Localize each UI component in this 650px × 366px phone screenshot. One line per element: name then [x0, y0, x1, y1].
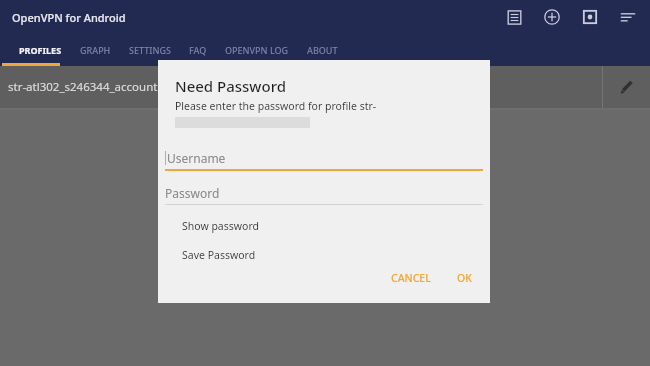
button[interactable]: GRAPH	[71, 34, 120, 66]
button[interactable]: PROFILES	[10, 34, 71, 66]
button[interactable]: Add profile	[540, 5, 564, 29]
button[interactable]: Save Password	[158, 247, 490, 263]
button[interactable]: Edit profile	[603, 66, 650, 108]
button[interactable]: SETTINGS	[120, 34, 180, 66]
button[interactable]: CANCEL	[387, 267, 435, 289]
button[interactable]: FAQ	[180, 34, 216, 66]
button[interactable]: ABOUT	[298, 34, 347, 66]
staticText: Need Password	[175, 76, 286, 96]
staticText: OpenVPN for Android	[12, 10, 126, 25]
button[interactable]: Username	[165, 145, 483, 171]
staticText: Please enter the password for profile st…	[175, 99, 377, 113]
staticText: Show password	[182, 219, 259, 233]
button[interactable]: Show password	[158, 218, 490, 234]
staticText: OPENVPN LOG	[225, 44, 289, 56]
button[interactable]: Import profile	[578, 5, 602, 29]
staticText: SETTINGS	[129, 44, 171, 56]
button[interactable]: OK	[453, 267, 476, 289]
staticText: PROFILES	[19, 44, 62, 56]
staticText: FAQ	[189, 44, 207, 56]
staticText: Save Password	[182, 248, 256, 262]
staticText: Username	[167, 150, 226, 166]
staticText: OK	[457, 271, 472, 285]
staticText: CANCEL	[391, 271, 431, 285]
button[interactable]: Sort	[616, 5, 640, 29]
staticText: Password	[165, 185, 220, 201]
staticText: ABOUT	[307, 44, 338, 56]
staticText: str-atl302_s246344_account	[8, 79, 158, 95]
button[interactable]: str-atl302_s246344_account	[0, 66, 650, 108]
button[interactable]: Profile list	[502, 5, 526, 29]
button[interactable]: OPENVPN LOG	[216, 34, 298, 66]
staticText: GRAPH	[80, 44, 111, 56]
button[interactable]: Password	[165, 181, 483, 205]
